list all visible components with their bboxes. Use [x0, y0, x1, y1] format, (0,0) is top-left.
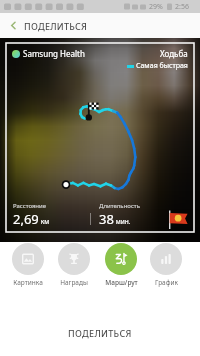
- staticText: Ходьба: [160, 48, 188, 59]
- staticText: 2,69: [13, 210, 39, 228]
- staticText: 2:56: [175, 2, 189, 12]
- button[interactable]: Back: [0, 13, 26, 38]
- button[interactable]: Марш/рут: [98, 243, 144, 287]
- button[interactable]: График: [143, 243, 189, 287]
- staticText: мин.: [114, 217, 131, 226]
- staticText: ПОДЕЛИТЬСЯ: [68, 327, 132, 339]
- staticText: Расстояние: [13, 202, 47, 210]
- staticText: Награды: [60, 278, 88, 287]
- staticText: 29%: [149, 2, 163, 12]
- staticText: Samsung Health: [23, 48, 85, 59]
- staticText: км: [39, 217, 50, 226]
- button[interactable]: ПОДЕЛИТЬСЯ: [0, 310, 200, 356]
- button[interactable]: Картинка: [5, 243, 51, 287]
- staticText: Картинка: [13, 278, 43, 287]
- staticText: Марш/рут: [105, 278, 138, 287]
- staticText: 38: [99, 210, 114, 228]
- button[interactable]: Награды: [51, 243, 97, 287]
- staticText: График: [155, 278, 178, 287]
- staticText: Длительность: [99, 202, 140, 210]
- staticText: ПОДЕЛИТЬСЯ: [24, 20, 88, 32]
- staticText: Самая быстрая: [136, 61, 188, 71]
